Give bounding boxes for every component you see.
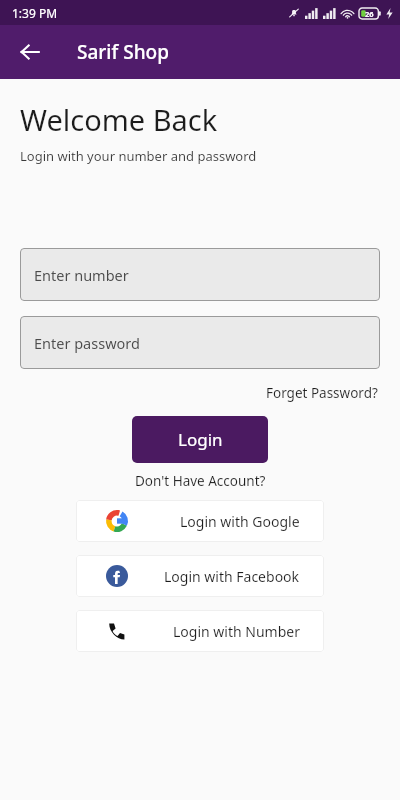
button[interactable]: Login with Number xyxy=(76,610,324,652)
button[interactable]: Login xyxy=(132,416,268,463)
staticText: Enter password xyxy=(34,333,140,353)
staticText: 1:39 PM xyxy=(12,5,58,21)
button[interactable]: Enter number xyxy=(20,248,380,301)
button[interactable]: Forget Password? xyxy=(264,383,380,403)
button[interactable]: Back xyxy=(8,30,52,74)
staticText: Login with your number and password xyxy=(20,147,257,165)
button[interactable]: Don't Have Account? xyxy=(132,471,269,491)
button[interactable]: Login with Google xyxy=(76,500,324,542)
staticText: Login with Number xyxy=(173,622,300,641)
button[interactable]: Login with Facebook xyxy=(76,555,324,597)
button[interactable]: Enter password xyxy=(20,316,380,369)
staticText: Forget Password? xyxy=(266,384,378,402)
staticText: Sarif Shop xyxy=(77,39,169,65)
staticText: 26 xyxy=(365,9,374,19)
staticText: Login xyxy=(178,428,223,451)
staticText: Welcome Back xyxy=(20,100,218,139)
staticText: Login with Google xyxy=(180,512,300,531)
staticText: Login with Facebook xyxy=(164,567,300,586)
staticText: Enter number xyxy=(34,265,129,285)
staticText: Don't Have Account? xyxy=(135,472,266,490)
